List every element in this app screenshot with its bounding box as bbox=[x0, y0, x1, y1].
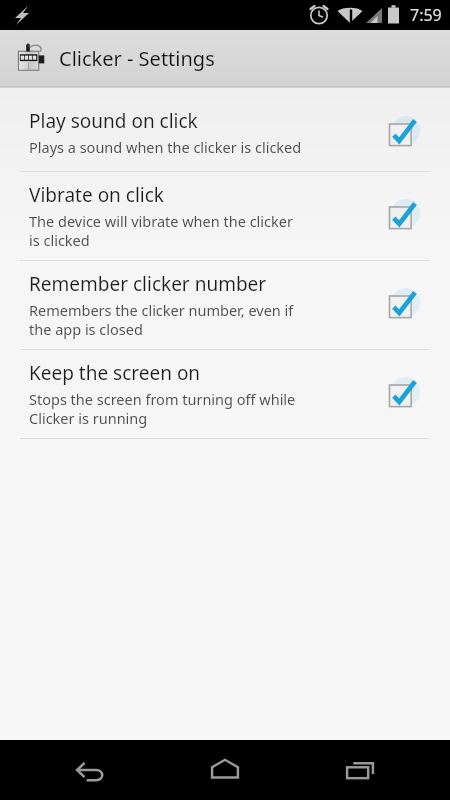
button[interactable]: Vibrate on click checkbox bbox=[385, 198, 421, 234]
staticText: Play sound on click bbox=[29, 108, 198, 134]
button[interactable]: Keep the screen on bbox=[0, 350, 450, 438]
staticText: Keep the screen on bbox=[29, 360, 201, 386]
staticText: Remember clicker number bbox=[29, 271, 267, 297]
button[interactable]: Play sound on click bbox=[0, 94, 450, 171]
other: Clicker app icon bbox=[14, 41, 48, 75]
staticText: Remembers the clicker number, even if th… bbox=[29, 300, 294, 339]
staticText: Stops the screen from turning off while … bbox=[29, 389, 296, 428]
button[interactable]: Home bbox=[180, 740, 270, 800]
staticText: Clicker - Settings bbox=[59, 45, 215, 72]
staticText: The device will vibrate when the clicker… bbox=[29, 211, 293, 250]
button[interactable]: Play sound on click checkbox bbox=[385, 115, 421, 151]
staticText: Vibrate on click bbox=[29, 182, 164, 208]
staticText: Plays a sound when the clicker is clicke… bbox=[29, 137, 302, 157]
button[interactable]: Remember clicker number bbox=[0, 261, 450, 349]
button[interactable]: Remember clicker number checkbox bbox=[385, 287, 421, 323]
button[interactable]: Vibrate on click bbox=[0, 172, 450, 260]
button[interactable]: Back bbox=[45, 740, 135, 800]
staticText: 7:59 bbox=[410, 4, 442, 26]
button[interactable]: Keep the screen on checkbox bbox=[385, 376, 421, 412]
button[interactable]: Recent apps bbox=[315, 740, 405, 800]
